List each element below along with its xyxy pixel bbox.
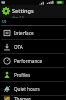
staticText: Settings — [12, 7, 34, 15]
button[interactable]: Quiet hours — [0, 82, 66, 95]
staticText: Performance — [14, 58, 43, 64]
staticText: UI — [2, 19, 7, 24]
other: Themes — [3, 96, 11, 100]
staticText: Profiles — [14, 72, 31, 78]
other: Interface — [3, 29, 11, 37]
staticText: slim 4.4 — [12, 16, 24, 18]
staticText: OTA — [14, 44, 23, 50]
staticText: Quiet hours — [14, 86, 40, 92]
staticText: Interface — [14, 30, 34, 36]
other: Profiles — [3, 71, 11, 79]
button[interactable]: Profiles — [0, 68, 66, 81]
button[interactable]: Themes — [0, 96, 66, 100]
button[interactable]: Performance — [0, 54, 66, 67]
staticText: Themes — [14, 96, 32, 100]
other: Performance — [3, 57, 11, 65]
other: OTA — [3, 43, 11, 51]
other: Quiet hours — [3, 85, 11, 93]
button[interactable]: Interface — [0, 26, 66, 39]
button[interactable]: Settings — [0, 5, 66, 18]
button[interactable]: OTA — [0, 40, 66, 53]
